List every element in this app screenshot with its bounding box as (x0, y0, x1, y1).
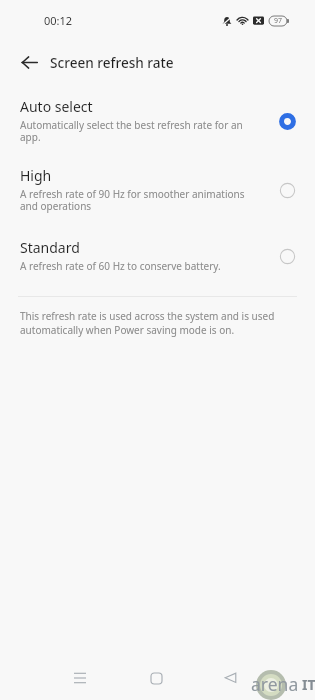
staticText: IT (302, 675, 315, 694)
staticText: This refresh rate is used across the sys… (20, 309, 293, 337)
staticText: Automatically select the best refresh ra… (20, 118, 251, 144)
staticText: High (20, 166, 52, 185)
button[interactable]: Standard (0, 224, 315, 287)
staticText: Auto select (20, 97, 93, 116)
staticText: A refresh rate of 90 Hz for smoother ani… (20, 187, 251, 213)
button[interactable]: High (0, 153, 315, 224)
button[interactable]: Recent apps (58, 656, 102, 700)
staticText: arena (251, 672, 299, 696)
staticText: Standard (20, 238, 80, 257)
staticText: A refresh rate of 60 Hz to conserve batt… (20, 259, 221, 273)
staticText: 97 (274, 16, 283, 26)
staticText: 00:12 (44, 13, 73, 28)
button[interactable]: Auto select (0, 84, 315, 153)
button[interactable]: Back (208, 656, 252, 700)
staticText: Screen refresh rate (50, 53, 174, 72)
button[interactable]: Home (134, 656, 178, 700)
button[interactable]: Back (7, 40, 51, 84)
